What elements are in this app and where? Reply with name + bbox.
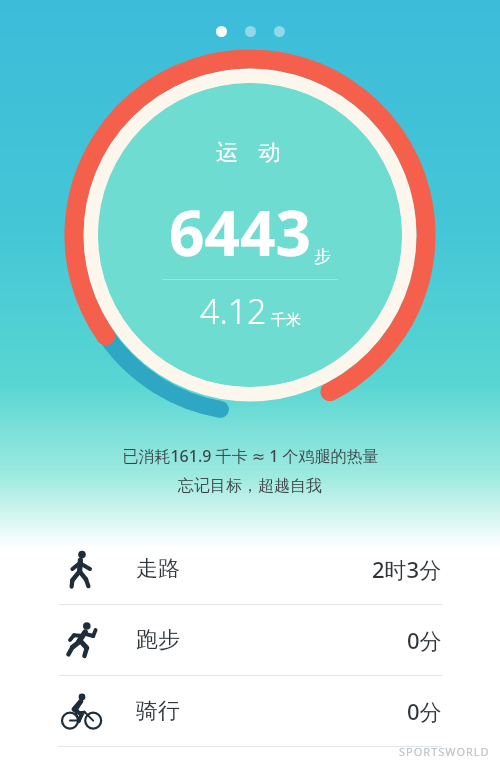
staticText: 运 动 bbox=[216, 136, 284, 166]
staticText: 已消耗161.9 千卡 ≈ 1 个鸡腿的热量 bbox=[122, 445, 379, 467]
staticText: 走路 bbox=[136, 555, 180, 583]
button[interactable] bbox=[216, 26, 227, 37]
button[interactable] bbox=[274, 26, 285, 37]
staticText: 骑行 bbox=[136, 697, 180, 725]
staticText: 忘记目标，超越自我 bbox=[178, 476, 322, 496]
staticText: 步 bbox=[314, 246, 331, 267]
button[interactable]: 骑行 bbox=[0, 676, 500, 746]
button[interactable] bbox=[245, 26, 256, 37]
button[interactable]: 走路 bbox=[0, 534, 500, 604]
staticText: SPORTSWORLD bbox=[399, 744, 490, 759]
staticText: 2时3分 bbox=[372, 554, 442, 584]
staticText: 千米 bbox=[271, 311, 301, 330]
staticText: 跑步 bbox=[136, 626, 180, 654]
staticText: 0分 bbox=[407, 696, 442, 726]
button[interactable]: 跑步 bbox=[0, 605, 500, 675]
staticText: 6443 bbox=[169, 190, 311, 274]
button[interactable]: 运动 6443 步 bbox=[70, 55, 430, 415]
staticText: 0分 bbox=[407, 625, 442, 655]
staticText: 4.12 bbox=[200, 288, 267, 334]
